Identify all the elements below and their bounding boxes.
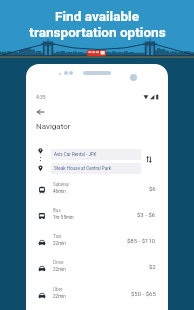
staticText: 22min (53, 267, 66, 272)
button[interactable]: Drive (26, 258, 168, 283)
staticText: 22min (53, 294, 66, 299)
button[interactable]: Steak House at Central Park (51, 163, 141, 174)
staticText: Bus (53, 208, 61, 213)
button[interactable]: Avis Car Rental - JFK (51, 149, 141, 160)
staticText: Steak House at Central Park (54, 166, 112, 171)
button[interactable]: Swap origin and destination (143, 153, 155, 165)
button[interactable]: Uber (26, 285, 168, 310)
button[interactable]: Taxi (26, 232, 168, 257)
staticText: transportation options (29, 24, 166, 40)
staticText: $6 (149, 185, 156, 192)
staticText: Taxi (53, 234, 62, 239)
staticText: $2 (149, 263, 156, 270)
staticText: 22min (53, 241, 66, 246)
staticText: 1hr 55min (53, 215, 74, 220)
staticText: Drive (53, 260, 64, 265)
staticText: Navigator (36, 122, 71, 131)
staticText: 46min (53, 189, 66, 194)
staticText: $50 - $65 (131, 290, 156, 297)
button[interactable]: Back (34, 106, 46, 118)
staticText: Find available (55, 8, 139, 24)
button[interactable]: Subway (26, 180, 168, 205)
button[interactable]: Bus (26, 206, 168, 231)
staticText: 4:35 (36, 94, 46, 100)
staticText: Subway (53, 182, 69, 187)
staticText: $85 - $110 (127, 237, 156, 244)
staticText: Uber (53, 287, 63, 292)
staticText: Avis Car Rental - JFK (54, 152, 97, 157)
staticText: $3 - $6 (137, 211, 156, 218)
